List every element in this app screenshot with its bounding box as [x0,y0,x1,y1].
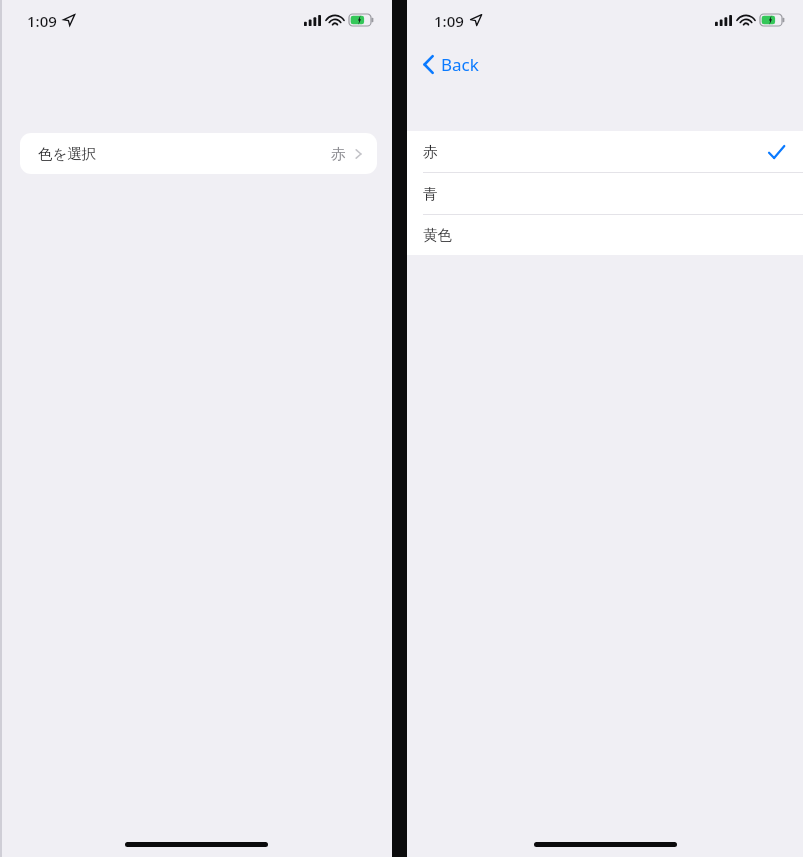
staticText: 1:09 [434,11,464,31]
button[interactable]: 黄色 [407,215,803,255]
button[interactable]: 青 [407,173,803,214]
button[interactable]: 色を選択 [20,133,377,174]
staticText: 黄色 [423,226,452,244]
staticText: 青 [423,185,438,203]
button[interactable]: Back [415,48,487,80]
staticText: 赤 [331,145,346,163]
staticText: 色を選択 [38,145,97,163]
button[interactable]: 赤 [407,131,803,172]
staticText: 赤 [423,143,438,161]
staticText: Back [441,53,479,76]
staticText: 1:09 [27,11,57,31]
